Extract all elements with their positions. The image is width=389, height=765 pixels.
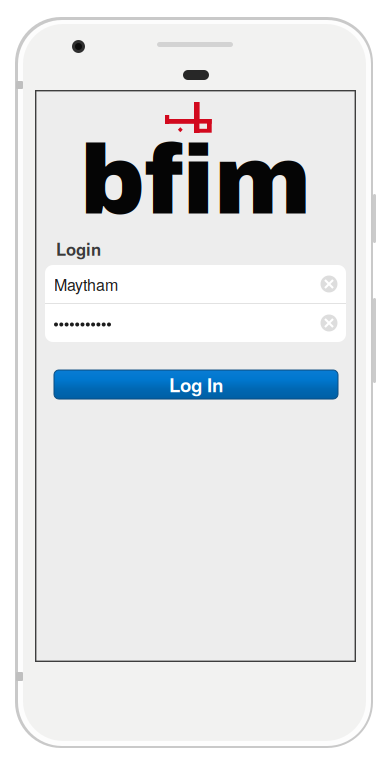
staticText: Log In xyxy=(169,371,223,398)
button[interactable]: Clear text xyxy=(315,269,343,299)
staticText: bfim xyxy=(80,128,311,234)
staticText: Maytham xyxy=(54,272,118,295)
button[interactable]: Clear text xyxy=(315,308,343,338)
staticText: Login xyxy=(56,237,101,261)
button[interactable]: Log In xyxy=(54,370,338,399)
